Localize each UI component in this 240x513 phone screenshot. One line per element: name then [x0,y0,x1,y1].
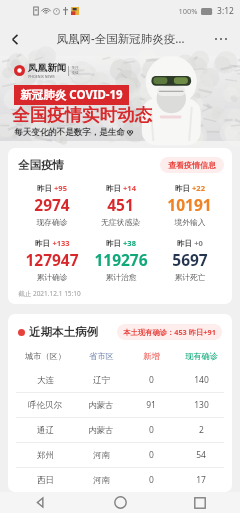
staticText: 关注 [71,66,79,71]
button[interactable]: 郑州 [8,443,232,467]
button[interactable]: 查看疫情信息 [160,157,224,173]
staticText: 昨日 [175,184,190,193]
staticText: 本土现有确诊：453 昨日+91 [123,327,216,337]
staticText: 通辽 [37,425,54,436]
staticText: 140 [194,374,209,386]
staticText: 现存确诊 [36,217,68,227]
staticText: 昨日 [37,184,52,193]
staticText: 境外输入 [174,217,206,227]
staticText: 全国疫情实时动态 [12,104,152,126]
staticText: 3:12 [217,5,234,17]
staticText: PHOENIX NEWS [28,74,55,79]
staticText: 17 [196,474,206,486]
staticText: 累计治愈 [105,272,137,282]
staticText: 河南 [93,475,110,486]
staticText: 全国疫情 [18,158,64,172]
staticText: 昨日 [177,239,192,248]
staticText: 新冠肺炎 COVID-19 [20,87,123,103]
staticText: +0 [194,238,203,248]
staticText: 0 [149,424,154,436]
staticText: 2 [199,424,204,436]
staticText: 截止 2021.12.1 15:10 [18,289,81,298]
staticText: 昨日 [106,184,121,193]
staticText: 辽宁 [93,375,110,386]
staticText: 凤凰网-全国新冠肺炎疫… [56,31,185,47]
button[interactable]: Home [80,492,160,513]
staticText: 近期本土病例 [29,325,98,339]
button[interactable]: 大连 [8,368,232,392]
staticText: 内蒙古 [88,425,114,436]
staticText: 现有确诊 [185,351,218,361]
staticText: 119276 [94,249,148,270]
staticText: 河南 [93,450,110,461]
button[interactable]: 本土现有确诊：453 昨日+91 [117,324,222,340]
staticText: 省市区 [89,351,114,361]
staticText: 无症状感染 [101,217,140,227]
staticText: 大连 [37,375,54,386]
staticText: 西日 [37,475,54,486]
staticText: 0 [149,474,154,486]
staticText: 5697 [172,249,208,270]
staticText: 10191 [167,194,212,215]
staticText: 130 [194,399,209,411]
button[interactable]: 呼伦贝尔 [8,393,232,417]
staticText: 每天变化的不是数字，是生命 [14,127,125,138]
button[interactable]: More options [208,26,234,52]
staticText: 昨日 [35,239,50,248]
staticText: +133 [52,238,70,248]
staticText: 凤凰新闻 [28,62,66,74]
staticText: +14 [123,183,136,193]
staticText: +22 [192,183,205,193]
button[interactable]: Recent apps [160,492,240,513]
staticText: 451 [107,194,134,215]
staticText: 内蒙古 [88,400,114,411]
staticText: 100% [178,6,198,16]
staticText: 疫情 [71,71,79,76]
staticText: +95 [54,183,67,193]
staticText: 91 [146,399,156,411]
staticText: 郑州 [37,450,54,461]
staticText: 127947 [25,249,79,270]
staticText: 查看疫情信息 [168,160,216,170]
staticText: +38 [123,238,136,248]
button[interactable]: 西日 [8,468,232,492]
staticText: 2974 [34,194,70,215]
staticText: 0 [149,449,154,461]
staticText: 累计死亡 [174,272,206,282]
staticText: 新增 [143,351,160,361]
staticText: 城市（区） [25,351,66,361]
staticText: 呼伦贝尔 [28,400,62,411]
staticText: 累计确诊 [36,272,68,282]
button[interactable]: Back [0,24,30,54]
button[interactable]: Back [0,492,80,513]
staticText: 54 [196,449,206,461]
staticText: 昨日 [106,239,121,248]
staticText: 0 [149,374,154,386]
button[interactable]: 通辽 [8,418,232,442]
